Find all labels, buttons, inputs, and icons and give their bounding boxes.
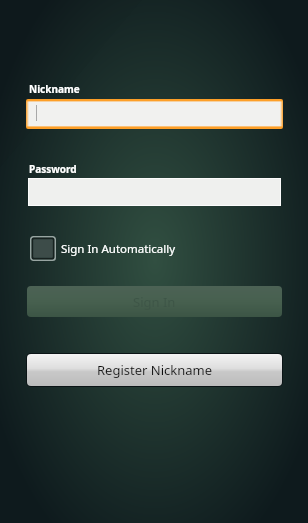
button[interactable]	[26, 99, 283, 129]
staticText: Register Nickname	[97, 361, 212, 379]
other: Sign In Automatically checkbox	[30, 236, 56, 261]
staticText: Password	[29, 162, 77, 176]
button[interactable]: Sign In Automatically checkbox	[30, 236, 176, 261]
staticText: Sign In Automatically	[61, 241, 176, 257]
staticText: Nickname	[29, 82, 80, 96]
staticText: Sign In	[133, 293, 176, 311]
button[interactable]: Register Nickname	[27, 354, 282, 386]
button[interactable]: Sign In	[27, 286, 282, 317]
